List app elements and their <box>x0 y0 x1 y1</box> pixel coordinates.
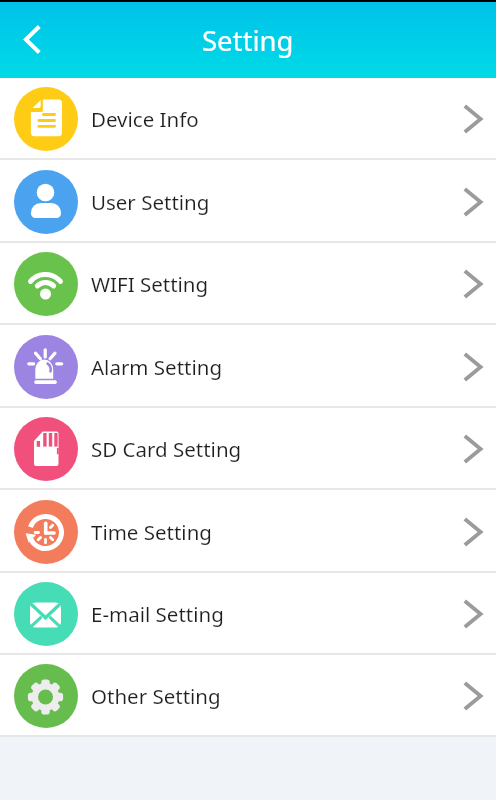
staticText: Alarm Setting <box>91 353 223 381</box>
button[interactable]: E-mail Setting <box>0 573 496 655</box>
button[interactable]: WIFI Setting <box>0 243 496 325</box>
button[interactable] <box>0 2 56 78</box>
staticText: WIFI Setting <box>91 270 209 298</box>
button[interactable]: SD Card Setting <box>0 408 496 490</box>
button[interactable]: Device Info <box>0 78 496 160</box>
button[interactable]: User Setting <box>0 160 496 243</box>
staticText: Device Info <box>91 105 199 133</box>
staticText: Time Setting <box>91 518 212 546</box>
staticText: E-mail Setting <box>91 600 224 628</box>
staticText: User Setting <box>91 188 210 216</box>
staticText: Other Setting <box>91 682 221 710</box>
staticText: SD Card Setting <box>91 435 242 463</box>
button[interactable]: Alarm Setting <box>0 325 496 408</box>
button[interactable]: Time Setting <box>0 490 496 573</box>
button[interactable]: Other Setting <box>0 655 496 737</box>
staticText: Setting <box>202 22 294 59</box>
